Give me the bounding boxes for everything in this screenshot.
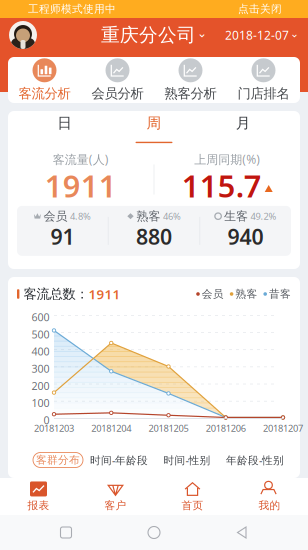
staticText: 上周同期(%): [194, 151, 260, 167]
button[interactable]: Profile: [9, 21, 37, 49]
staticText: 工程师模式使用中: [28, 2, 116, 15]
button[interactable]: Recents: [44, 517, 88, 547]
button[interactable]: 客流分析: [8, 58, 81, 102]
staticText: 1911: [88, 285, 120, 303]
button[interactable]: 周: [109, 115, 199, 143]
staticText: 91: [50, 222, 74, 250]
button[interactable]: Home: [132, 517, 176, 547]
staticText: 200: [31, 379, 49, 393]
staticText: 20181205: [148, 422, 188, 434]
staticText: 时间-年龄段: [90, 453, 148, 467]
button[interactable]: 日: [20, 115, 109, 143]
button[interactable]: 门店排名: [227, 58, 300, 102]
button[interactable]: Back: [220, 517, 264, 547]
staticText: 熟客: [235, 287, 257, 300]
staticText: 1911: [45, 165, 117, 206]
button[interactable]: 2018-12-07: [225, 27, 299, 43]
button[interactable]: 客群分布: [33, 452, 83, 467]
staticText: 会员: [43, 209, 67, 223]
staticText: 会员: [202, 287, 224, 300]
staticText: 周: [146, 114, 161, 132]
staticText: 点击关闭: [238, 2, 282, 15]
button[interactable]: 月: [199, 115, 288, 143]
staticText: 会员分析: [91, 85, 143, 102]
staticText: 115.7: [182, 165, 262, 206]
staticText: 年龄段-性别: [226, 453, 284, 467]
staticText: 客流分析: [18, 85, 70, 102]
button[interactable]: 工程师模式使用中: [0, 0, 308, 18]
staticText: 客群分布: [36, 453, 80, 466]
staticText: 时间-性别: [163, 453, 210, 467]
button[interactable]: 客户: [77, 478, 154, 515]
staticText: 2018-12-07: [225, 27, 289, 43]
staticText: 客流量(人): [53, 151, 109, 167]
staticText: 客户: [104, 499, 126, 512]
staticText: 我的: [258, 499, 280, 512]
staticText: 熟客分析: [164, 85, 216, 102]
staticText: 20181206: [206, 422, 246, 434]
staticText: 4.8%: [70, 210, 91, 222]
staticText: 首页: [181, 499, 203, 512]
button[interactable]: 重庆分公司: [0, 22, 308, 48]
staticText: 日: [57, 114, 72, 132]
staticText: 昔客: [269, 287, 291, 300]
staticText: 客流总数：: [23, 286, 88, 302]
staticText: 49.2%: [251, 210, 277, 222]
staticText: 20181207: [263, 422, 303, 434]
staticText: 300: [31, 361, 49, 376]
staticText: 生客: [224, 209, 248, 223]
staticText: 月: [236, 114, 251, 132]
button[interactable]: 时间-性别: [155, 452, 219, 467]
staticText: 500: [31, 327, 49, 341]
staticText: 20181203: [34, 422, 74, 434]
staticText: 0: [43, 413, 49, 427]
staticText: 重庆分公司: [101, 23, 196, 46]
button[interactable]: 熟客分析: [154, 58, 227, 102]
button[interactable]: 会员分析: [81, 58, 154, 102]
button[interactable]: 年龄段-性别: [219, 452, 291, 467]
staticText: 熟客: [136, 209, 160, 223]
staticText: ⌄: [290, 27, 299, 39]
staticText: 880: [136, 222, 172, 250]
button[interactable]: 首页: [154, 478, 231, 515]
staticText: 400: [31, 344, 49, 358]
button[interactable]: 我的: [231, 478, 308, 515]
staticText: 门店排名: [237, 85, 289, 102]
staticText: 940: [228, 222, 264, 250]
staticText: 报表: [27, 499, 49, 512]
staticText: 20181204: [91, 422, 131, 434]
button[interactable]: 报表: [0, 478, 77, 515]
staticText: 100: [31, 396, 49, 410]
staticText: 600: [31, 310, 49, 324]
staticText: 46%: [163, 210, 181, 222]
button[interactable]: 时间-年龄段: [83, 452, 155, 467]
staticText: ⌄: [197, 26, 207, 40]
